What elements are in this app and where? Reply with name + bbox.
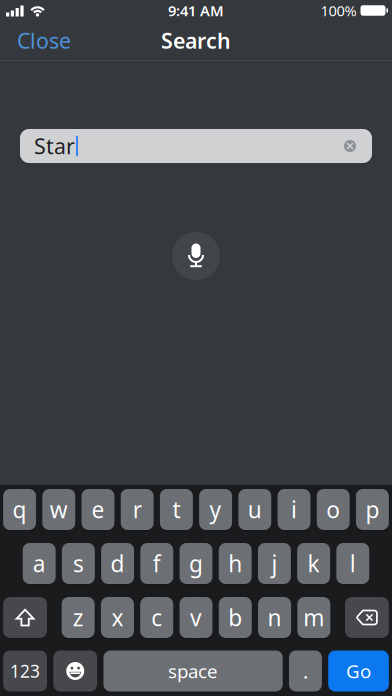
staticText: y — [210, 494, 222, 524]
staticText: x — [111, 602, 123, 632]
button[interactable]: q — [3, 489, 36, 530]
button[interactable]: p — [356, 489, 389, 530]
staticText: q — [13, 494, 27, 524]
button[interactable]: . — [289, 650, 322, 691]
button[interactable]: c — [140, 597, 173, 638]
button[interactable]: w — [42, 489, 75, 530]
button[interactable]: f — [140, 543, 173, 584]
staticText: . — [303, 658, 308, 684]
button[interactable]: a — [23, 543, 56, 584]
button[interactable]: b — [219, 597, 252, 638]
button[interactable]: Go — [328, 650, 389, 691]
button[interactable]: m — [297, 597, 330, 638]
staticText: e — [91, 494, 104, 524]
staticText: o — [326, 494, 340, 524]
staticText: u — [248, 494, 262, 524]
button[interactable]: Delete — [345, 597, 389, 638]
staticText: b — [228, 602, 242, 632]
staticText: s — [73, 548, 84, 578]
staticText: i — [291, 494, 297, 524]
button[interactable]: s — [62, 543, 95, 584]
button[interactable]: Dictate — [172, 232, 220, 280]
staticText: 100% — [320, 1, 356, 20]
button[interactable]: n — [258, 597, 291, 638]
staticText: 9:41 AM — [168, 1, 224, 20]
button[interactable]: Shift — [3, 597, 47, 638]
staticText: a — [33, 548, 46, 578]
staticText: w — [50, 494, 68, 524]
staticText: v — [190, 602, 202, 632]
button[interactable]: u — [238, 489, 271, 530]
staticText: Star — [34, 132, 75, 160]
button[interactable]: Clear text — [344, 140, 356, 152]
staticText: m — [303, 602, 324, 632]
button[interactable]: o — [317, 489, 350, 530]
staticText: n — [268, 602, 282, 632]
button[interactable]: l — [336, 543, 369, 584]
button[interactable]: z — [62, 597, 95, 638]
button[interactable]: Close — [17, 26, 71, 55]
button[interactable]: j — [258, 543, 291, 584]
staticText: Search — [161, 26, 231, 55]
staticText: space — [168, 659, 218, 683]
staticText: c — [151, 602, 162, 632]
button[interactable]: h — [219, 543, 252, 584]
staticText: z — [73, 602, 84, 632]
staticText: h — [228, 548, 242, 578]
staticText: g — [189, 548, 203, 578]
button[interactable]: x — [101, 597, 134, 638]
button[interactable]: 123 — [3, 650, 47, 691]
button[interactable]: Emoji — [53, 650, 97, 691]
staticText: Go — [346, 659, 371, 683]
button[interactable]: y — [199, 489, 232, 530]
button[interactable]: g — [179, 543, 212, 584]
button[interactable]: v — [179, 597, 212, 638]
staticText: j — [271, 548, 277, 578]
button[interactable]: e — [81, 489, 114, 530]
staticText: f — [153, 548, 161, 578]
staticText: r — [133, 494, 142, 524]
button[interactable]: space — [103, 650, 283, 691]
staticText: l — [350, 548, 356, 578]
staticText: p — [365, 494, 379, 524]
staticText: 123 — [10, 659, 40, 682]
button[interactable]: k — [297, 543, 330, 584]
staticText: Close — [17, 26, 71, 55]
button[interactable]: r — [121, 489, 154, 530]
staticText: t — [172, 494, 180, 524]
button[interactable]: i — [277, 489, 310, 530]
button[interactable]: d — [101, 543, 134, 584]
button[interactable]: t — [160, 489, 193, 530]
staticText: d — [111, 548, 125, 578]
staticText: k — [308, 548, 320, 578]
